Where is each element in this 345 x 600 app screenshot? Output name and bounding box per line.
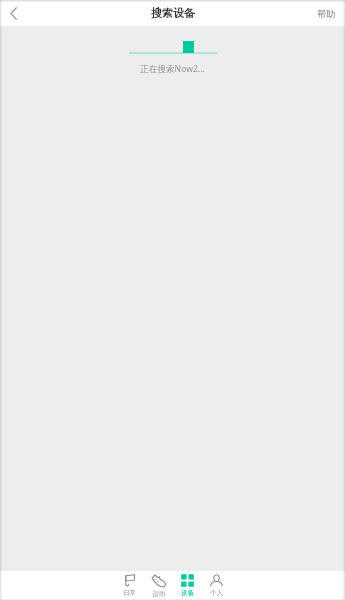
button[interactable]: 个人: [202, 571, 231, 600]
staticText: 搜索设备: [151, 6, 195, 20]
staticText: 个人: [210, 589, 224, 597]
staticText: 日常: [123, 589, 137, 597]
button[interactable]: Back: [0, 0, 26, 26]
button[interactable]: 帮助: [307, 0, 345, 26]
staticText: 运动: [152, 590, 166, 598]
button[interactable]: 设备: [173, 571, 202, 600]
staticText: 设备: [181, 589, 195, 597]
button[interactable]: 日常: [115, 571, 144, 600]
staticText: 正在搜索Now2...: [140, 63, 205, 75]
button[interactable]: 运动: [144, 571, 173, 600]
staticText: 帮助: [317, 8, 335, 19]
